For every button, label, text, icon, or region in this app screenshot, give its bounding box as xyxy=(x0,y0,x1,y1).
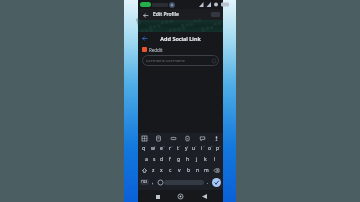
staticText: v xyxy=(178,167,181,174)
staticText: Reddit xyxy=(149,47,163,53)
staticText: , xyxy=(152,179,154,186)
button[interactable]: Save xyxy=(211,12,220,17)
button[interactable]: Space xyxy=(164,180,204,185)
button[interactable]: f xyxy=(166,154,174,165)
button[interactable]: v xyxy=(175,165,184,176)
button[interactable]: g xyxy=(174,154,183,165)
button[interactable]: u xyxy=(190,143,198,154)
button[interactable]: Close xyxy=(140,34,148,42)
button[interactable]: username.username xyxy=(142,55,219,66)
staticText: w xyxy=(151,145,155,152)
staticText: f xyxy=(169,156,171,163)
button[interactable]: b xyxy=(184,165,193,176)
staticText: 3 xyxy=(163,144,165,147)
staticText: 2 xyxy=(154,144,156,147)
button[interactable]: Home xyxy=(176,192,185,201)
button[interactable]: , xyxy=(149,176,156,188)
button[interactable]: Keyboard tool 2 xyxy=(155,135,162,142)
button[interactable]: j xyxy=(192,154,201,165)
staticText: l xyxy=(214,156,216,163)
staticText: 6 xyxy=(187,144,189,147)
staticText: g xyxy=(177,156,181,163)
button[interactable]: . xyxy=(204,176,212,188)
staticText: a xyxy=(145,156,148,163)
staticText: ?123 xyxy=(141,180,148,184)
button[interactable]: Keyboard tool 3 xyxy=(170,135,177,142)
staticText: d xyxy=(160,156,164,163)
button[interactable]: Back xyxy=(141,11,149,19)
button[interactable]: Shift xyxy=(139,165,149,176)
button[interactable]: Back xyxy=(200,192,209,201)
staticText: Add Social Link xyxy=(160,35,201,42)
staticText: username.username xyxy=(146,58,186,63)
staticText: p xyxy=(216,145,220,152)
button[interactable]: a xyxy=(142,154,150,165)
staticText: r xyxy=(169,145,172,152)
staticText: s xyxy=(153,156,156,163)
staticText: . xyxy=(207,179,209,186)
staticText: m xyxy=(204,167,209,174)
button[interactable]: Symbols xyxy=(140,179,149,185)
staticText: 7 xyxy=(195,144,197,147)
staticText: c xyxy=(169,167,172,174)
button[interactable]: Recents xyxy=(153,192,162,201)
button[interactable]: z xyxy=(149,165,157,176)
button[interactable]: Reddit xyxy=(142,44,219,55)
button[interactable]: Emoji xyxy=(156,176,164,188)
button[interactable]: n xyxy=(193,165,202,176)
staticText: u xyxy=(192,145,196,152)
button[interactable]: m xyxy=(202,165,211,176)
staticText: o xyxy=(208,145,212,152)
staticText: z xyxy=(152,167,155,174)
staticText: 8 xyxy=(203,144,205,147)
staticText: 0 xyxy=(219,144,221,147)
staticText: x xyxy=(160,167,163,174)
staticText: n xyxy=(196,167,200,174)
button[interactable]: c xyxy=(166,165,175,176)
staticText: j xyxy=(196,156,198,163)
staticText: i xyxy=(201,145,203,152)
button[interactable]: e xyxy=(157,143,166,154)
button[interactable]: r xyxy=(166,143,174,154)
button[interactable]: q xyxy=(139,143,148,154)
staticText: b xyxy=(187,167,191,174)
button[interactable]: x xyxy=(157,165,166,176)
button[interactable]: i xyxy=(198,143,206,154)
button[interactable]: Keyboard tool 5 xyxy=(199,135,206,142)
staticText: Edit Profile xyxy=(153,11,179,18)
button[interactable]: Keyboard tool 4 xyxy=(184,135,191,142)
button[interactable]: y xyxy=(182,143,190,154)
button[interactable]: d xyxy=(158,154,166,165)
button[interactable]: h xyxy=(183,154,192,165)
button[interactable]: Enter xyxy=(212,178,221,187)
staticText: 9 xyxy=(211,144,213,147)
staticText: q xyxy=(142,145,146,152)
button[interactable]: Backspace xyxy=(211,165,222,176)
staticText: 5 xyxy=(179,144,181,147)
button[interactable]: p xyxy=(214,143,222,154)
staticText: t xyxy=(177,145,179,152)
staticText: k xyxy=(204,156,207,163)
button[interactable]: s xyxy=(150,154,158,165)
staticText: y xyxy=(185,145,188,152)
button[interactable]: Keyboard tool 6 xyxy=(213,135,220,142)
button[interactable]: t xyxy=(174,143,182,154)
button[interactable]: l xyxy=(210,154,219,165)
staticText: e xyxy=(160,145,163,152)
staticText: h xyxy=(186,156,190,163)
button[interactable]: w xyxy=(148,143,157,154)
button[interactable]: o xyxy=(206,143,214,154)
button[interactable]: k xyxy=(201,154,210,165)
staticText: 1 xyxy=(145,144,147,147)
button[interactable]: Keyboard tool 1 xyxy=(141,135,148,142)
staticText: 4 xyxy=(171,144,173,147)
